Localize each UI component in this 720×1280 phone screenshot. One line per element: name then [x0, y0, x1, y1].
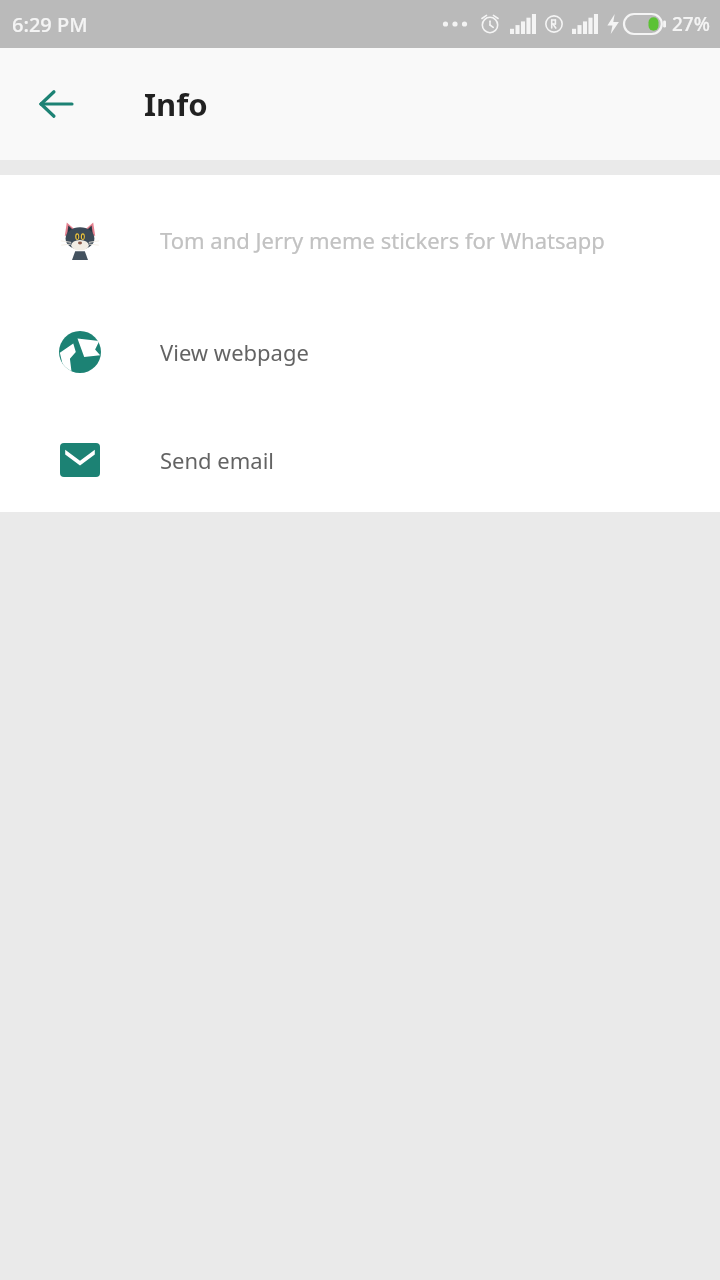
staticText: View webpage	[160, 337, 309, 367]
button[interactable]: Tom and Jerry meme stickers for Whatsapp	[0, 184, 720, 296]
staticText: Info	[144, 83, 208, 125]
button[interactable]: View webpage	[0, 296, 720, 408]
staticText: 27%	[672, 11, 710, 37]
button[interactable]: Send email	[0, 408, 720, 512]
button[interactable]: Back	[24, 72, 88, 136]
staticText: Tom and Jerry meme stickers for Whatsapp	[160, 225, 605, 255]
staticText: 6:29 PM	[12, 11, 88, 38]
staticText: Send email	[160, 445, 275, 475]
